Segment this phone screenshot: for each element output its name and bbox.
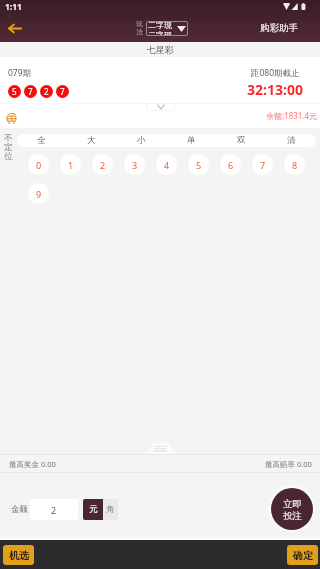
staticText: 二字现 <box>148 21 172 30</box>
staticText: 5 <box>196 159 202 171</box>
staticText: 距080期截止 <box>251 67 300 79</box>
staticText: 7 <box>28 86 33 97</box>
staticText: 机选 <box>9 549 29 562</box>
staticText: 金额 <box>11 504 28 515</box>
button[interactable]: 清 <box>266 134 316 147</box>
button[interactable]: 全 <box>17 134 66 147</box>
button[interactable]: 购彩助手 <box>250 14 320 42</box>
staticText: 0 <box>36 159 42 171</box>
staticText: 小 <box>137 135 146 146</box>
staticText: 立即 投注 <box>283 498 302 521</box>
staticText: 玩 法 <box>136 20 143 36</box>
button[interactable]: 6 <box>220 154 241 175</box>
button[interactable]: 双 <box>216 134 266 147</box>
button[interactable]: Back <box>0 14 28 42</box>
button[interactable]: 2 <box>30 499 78 520</box>
button[interactable]: 单 <box>166 134 216 147</box>
staticText: 双 <box>237 135 246 146</box>
staticText: 购彩助手 <box>260 22 298 34</box>
button[interactable]: 立即 投注 <box>271 488 313 530</box>
staticText: 不 定 位 <box>4 133 13 161</box>
staticText: 6 <box>228 159 234 171</box>
button[interactable]: 7 <box>252 154 273 175</box>
staticText: 最高赔率 0.00 <box>265 459 312 469</box>
staticText: 1 <box>68 159 74 171</box>
button[interactable]: 5 <box>188 154 209 175</box>
staticText: 1:11 <box>5 1 22 13</box>
staticText: 单 <box>187 135 196 146</box>
button[interactable]: 3 <box>124 154 145 175</box>
button[interactable]: 1 <box>60 154 81 175</box>
button[interactable]: Announcement <box>6 113 17 124</box>
button[interactable]: 小 <box>116 134 166 147</box>
staticText: 32:13:00 <box>247 80 303 99</box>
button[interactable]: 9 <box>28 183 49 204</box>
staticText: 七星彩 <box>147 44 174 55</box>
staticText: 大 <box>87 135 96 146</box>
button[interactable]: 确定 <box>287 545 318 565</box>
staticText: 确定 <box>293 549 313 562</box>
button[interactable]: 大 <box>66 134 116 147</box>
button[interactable]: 8 <box>284 154 305 175</box>
button[interactable]: 2 <box>92 154 113 175</box>
staticText: 7 <box>60 86 65 97</box>
button[interactable]: 4 <box>156 154 177 175</box>
staticText: 4 <box>164 159 170 171</box>
staticText: 8 <box>292 159 298 171</box>
staticText: 二字现 <box>148 30 172 35</box>
staticText: 2 <box>44 86 49 97</box>
staticText: 7 <box>260 159 266 171</box>
button[interactable]: 机选 <box>3 545 34 565</box>
button[interactable]: 角 <box>103 499 118 520</box>
staticText: 9 <box>36 188 42 200</box>
staticText: 余额:1831.4元 <box>266 110 318 121</box>
staticText: 2 <box>51 504 57 516</box>
staticText: 2 <box>100 159 106 171</box>
staticText: 元 <box>89 504 98 515</box>
button[interactable]: 元 <box>83 499 103 520</box>
staticText: 角 <box>106 504 115 515</box>
staticText: 5 <box>12 86 17 97</box>
button[interactable]: Collapse <box>146 103 175 111</box>
staticText: 3 <box>132 159 138 171</box>
staticText: 清 <box>287 135 296 146</box>
staticText: 079期 <box>8 67 32 79</box>
staticText: 最高奖金 0.00 <box>9 459 56 469</box>
staticText: 全 <box>37 135 46 146</box>
button[interactable]: 二字现 <box>146 21 188 36</box>
button[interactable]: 0 <box>28 154 49 175</box>
